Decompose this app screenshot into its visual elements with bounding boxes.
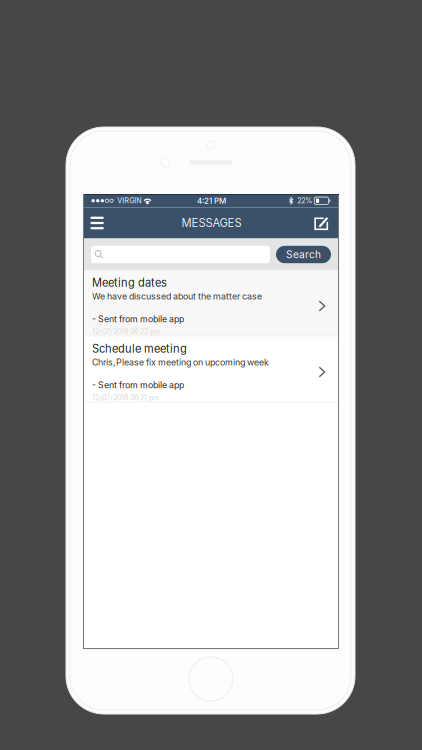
- staticText: 12/07/2018 06:21 pm: [92, 393, 159, 402]
- button[interactable]: Search: [276, 246, 331, 263]
- button[interactable]: Schedule meeting: [84, 336, 339, 401]
- staticText: Schedule meeting: [92, 342, 187, 355]
- staticText: 22%: [293, 196, 314, 205]
- button[interactable]: Compose: [309, 207, 335, 238]
- staticText: 4:21 PM: [197, 196, 226, 206]
- button[interactable]: Meeting dates: [84, 270, 339, 335]
- staticText: We have discussed about the matter case: [92, 291, 262, 302]
- staticText: MESSAGES: [181, 216, 241, 230]
- staticText: - Sent from mobile app: [92, 314, 184, 324]
- staticText: Chris,Please fix meeting on upcoming wee…: [92, 357, 269, 368]
- button[interactable]: Menu: [84, 207, 110, 238]
- staticText: Search: [286, 248, 321, 261]
- staticText: - Sent from mobile app: [92, 380, 184, 390]
- staticText: VIRGIN: [113, 196, 143, 205]
- staticText: Meeting dates: [92, 276, 167, 289]
- staticText: 12/07/2018 06:22 pm: [92, 327, 160, 336]
